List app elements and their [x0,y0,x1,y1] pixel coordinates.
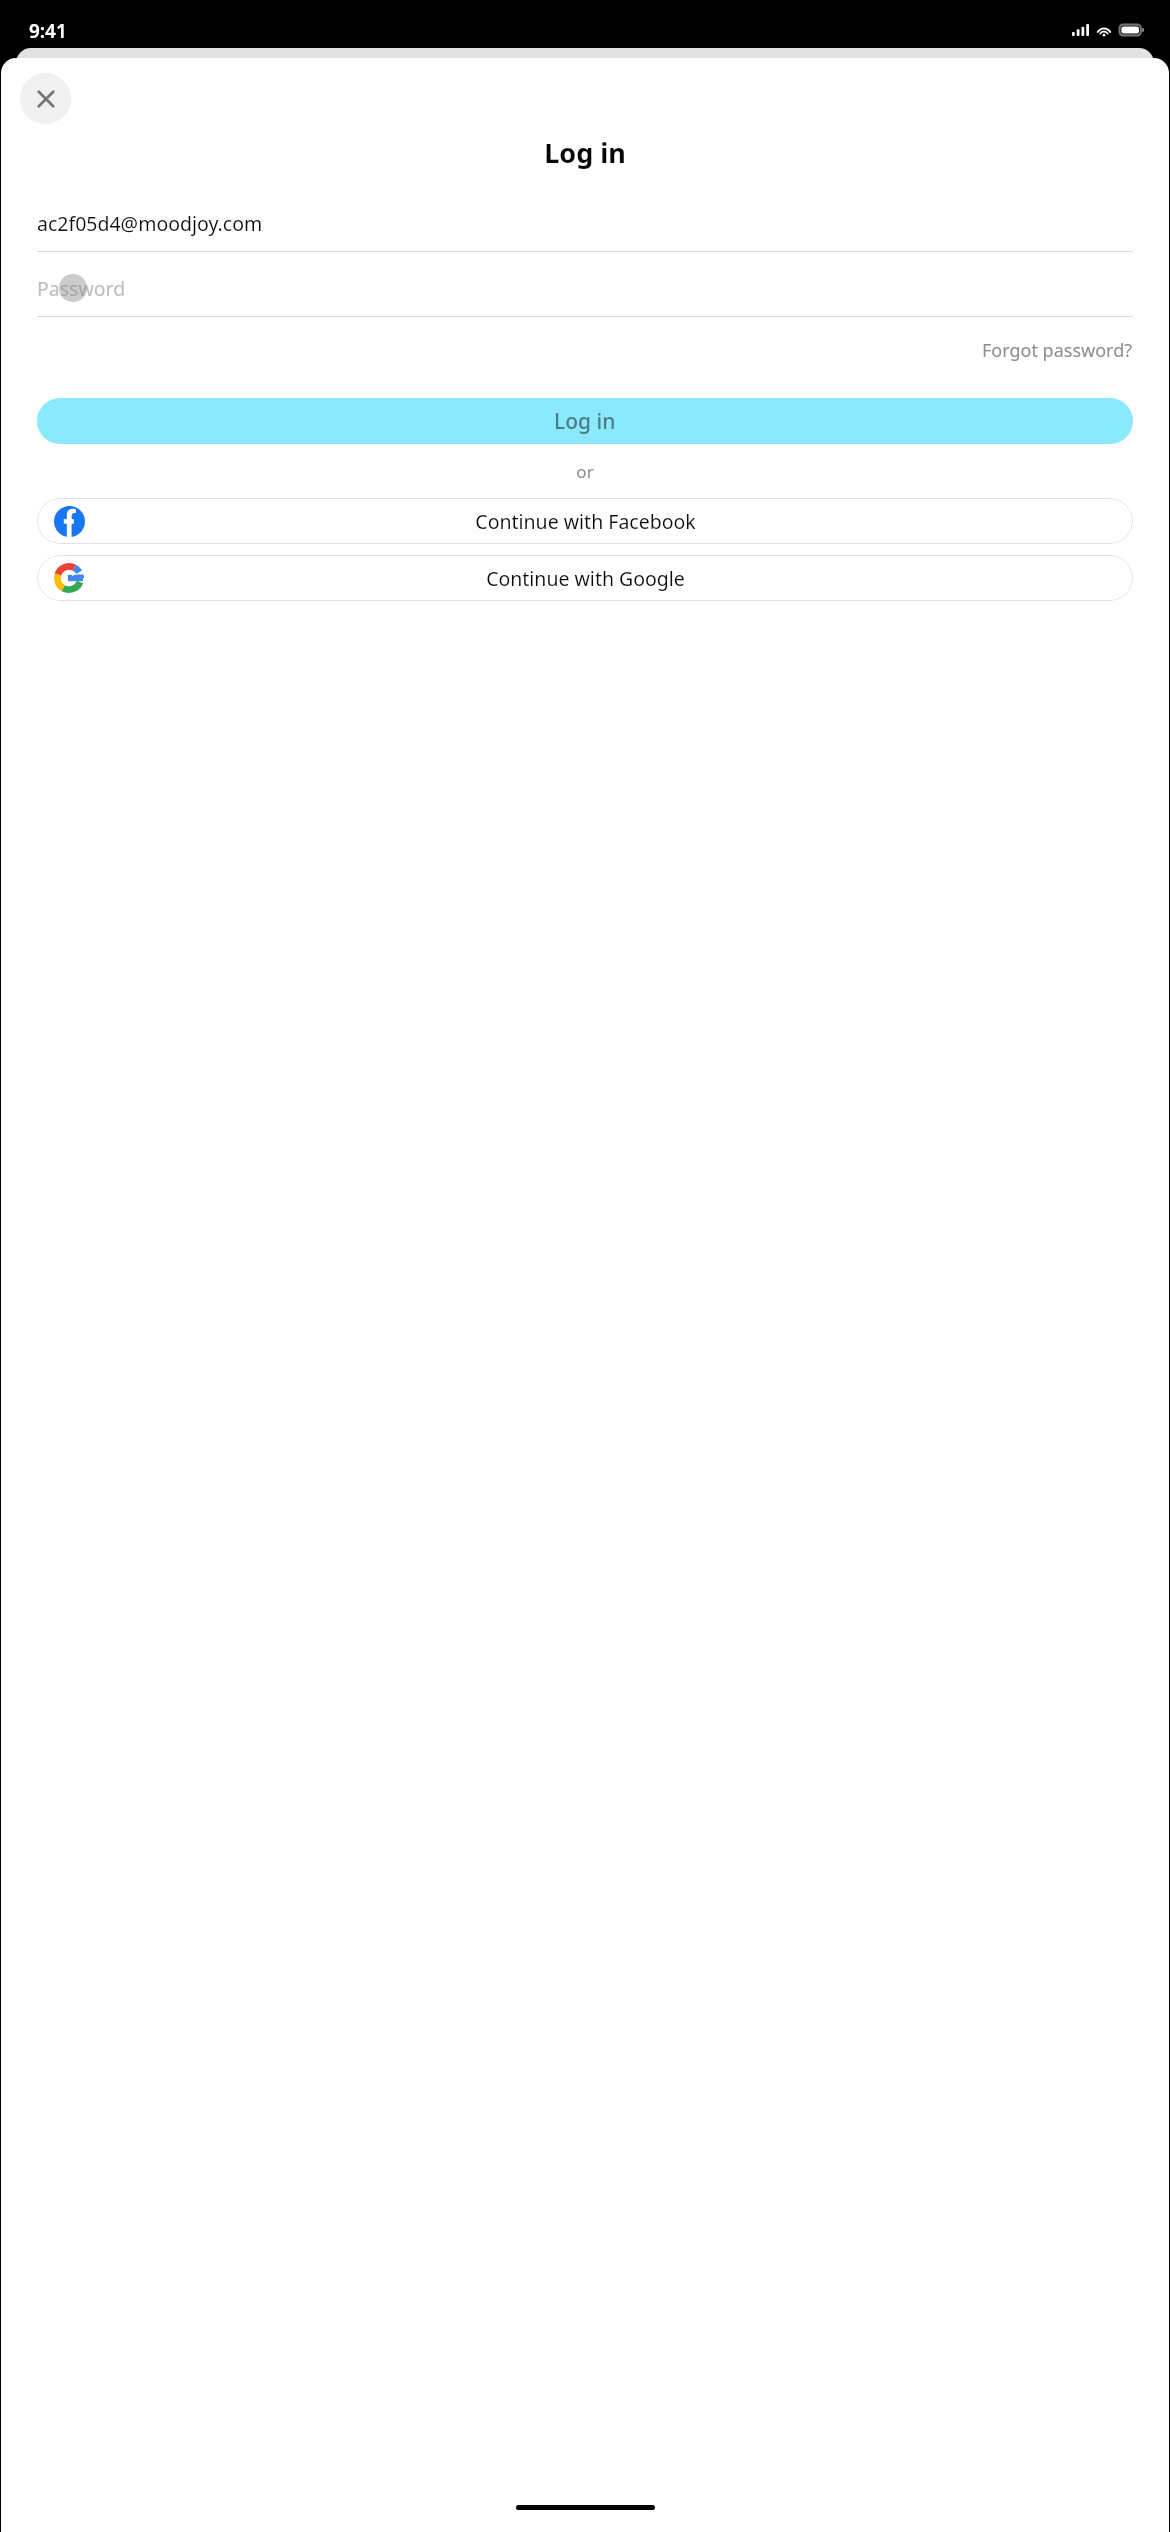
staticText: or [1,460,1169,483]
staticText: Password [37,275,126,302]
button[interactable]: ac2f05d4@moodjoy.com [37,204,1133,242]
staticText: Log in [1,134,1169,171]
button[interactable]: Log in [37,398,1133,444]
staticText: ac2f05d4@moodjoy.com [37,210,263,237]
staticText: Forgot password? [982,338,1133,363]
button[interactable]: Forgot password? [982,334,1133,367]
button[interactable]: Continue with Google [37,555,1133,601]
staticText: Log in [554,407,616,436]
button[interactable]: Password [37,269,1133,307]
staticText: Continue with Google [486,565,685,592]
staticText: Continue with Facebook [475,508,696,535]
staticText: 9:41 [29,18,67,44]
button[interactable]: Close [20,73,71,124]
button[interactable]: Continue with Facebook [37,498,1133,544]
